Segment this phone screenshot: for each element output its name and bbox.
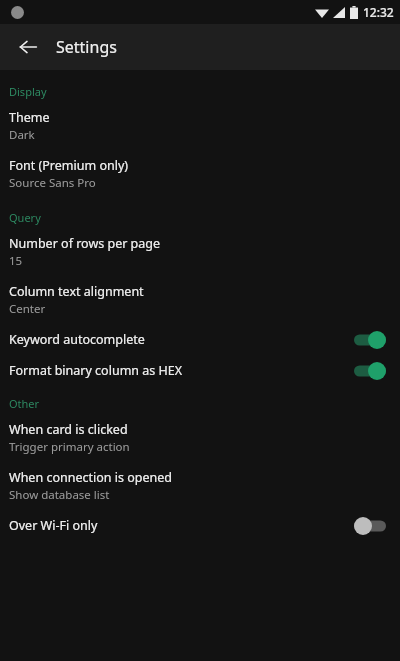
staticText: Keyword autocomplete — [9, 331, 354, 348]
button[interactable]: Keyword autocomplete — [0, 324, 400, 355]
staticText: When card is clicked — [9, 421, 128, 438]
staticText: Other — [9, 396, 40, 411]
button[interactable]: Over Wi-Fi only — [0, 510, 400, 541]
staticText: Trigger primary action — [9, 439, 130, 455]
staticText: Query — [9, 210, 41, 225]
staticText: Font (Premium only) — [9, 157, 129, 174]
button[interactable]: Column text alignment — [0, 276, 400, 324]
staticText: Source Sans Pro — [9, 175, 96, 191]
staticText: Settings — [56, 36, 117, 58]
button[interactable]: Number of rows per page — [0, 228, 400, 276]
staticText: Center — [9, 301, 46, 317]
staticText: Theme — [9, 109, 50, 126]
staticText: 15 — [9, 253, 23, 269]
staticText: Display — [9, 84, 47, 99]
staticText: Column text alignment — [9, 283, 144, 300]
button[interactable]: Theme — [0, 102, 400, 150]
button[interactable]: Format binary column as HEX — [0, 355, 400, 386]
staticText: 12:32 — [363, 4, 394, 20]
staticText: Over Wi-Fi only — [9, 517, 354, 534]
button[interactable]: Back — [8, 27, 48, 67]
button[interactable]: Font (Premium only) — [0, 150, 400, 198]
staticText: When connection is opened — [9, 469, 172, 486]
staticText: Number of rows per page — [9, 235, 161, 252]
button[interactable]: When card is clicked — [0, 414, 400, 462]
button[interactable]: When connection is opened — [0, 462, 400, 510]
staticText: Dark — [9, 127, 35, 143]
staticText: Show database list — [9, 487, 110, 503]
staticText: Format binary column as HEX — [9, 362, 354, 379]
